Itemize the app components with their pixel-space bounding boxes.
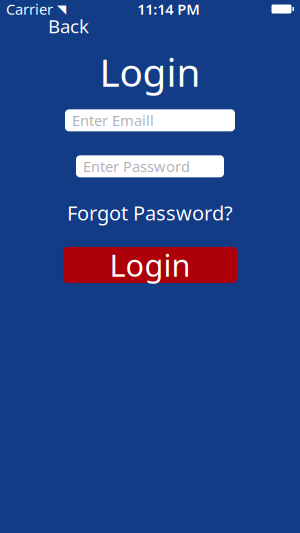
staticText: Forgot Password? xyxy=(67,199,233,226)
staticText: Login xyxy=(99,46,200,97)
staticText: ◥ xyxy=(57,2,66,16)
button[interactable]: Forgot Password? xyxy=(61,197,239,228)
button[interactable]: Back xyxy=(40,11,97,41)
staticText: Carrier xyxy=(6,0,53,19)
staticText: Enter Emaill xyxy=(72,111,154,130)
staticText: Enter Password xyxy=(83,157,190,176)
staticText: 11:14 PM xyxy=(137,0,200,19)
staticText: Back xyxy=(48,14,89,38)
staticText: Login xyxy=(109,244,190,285)
button[interactable]: Login xyxy=(63,247,237,283)
